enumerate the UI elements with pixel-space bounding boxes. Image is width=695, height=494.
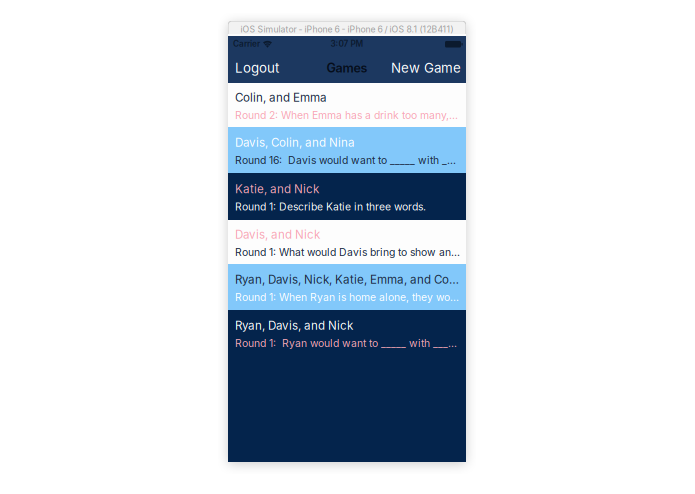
staticText: 3:07 PM — [330, 39, 363, 49]
staticText: Round 16: Davis would want to _____ with… — [235, 154, 456, 167]
staticText: Davis, and Nick — [235, 227, 320, 241]
button[interactable]: Katie, and Nick — [228, 173, 466, 220]
staticText: Colin, and Emma — [235, 90, 327, 104]
staticText: Katie, and Nick — [235, 182, 319, 196]
button[interactable]: Ryan, Davis, Nick, Katie, Emma, and Co… — [228, 264, 466, 310]
staticText: iOS Simulator - iPhone 6 - iPhone 6 / iO… — [240, 24, 453, 34]
staticText: Round 1: Describe Katie in three words. — [235, 200, 426, 213]
staticText: Round 1: When Ryan is home alone, they w… — [235, 291, 459, 304]
staticText: Round 2: When Emma has a drink too many,… — [235, 109, 458, 122]
button[interactable]: Davis, Colin, and Nina — [228, 127, 466, 173]
staticText: Davis, Colin, and Nina — [235, 135, 355, 149]
button[interactable]: Colin, and Emma — [228, 83, 466, 127]
button[interactable]: Ryan, Davis, and Nick — [228, 310, 466, 356]
button[interactable]: Logout — [228, 51, 285, 84]
staticText: Carrier — [233, 39, 260, 49]
staticText: Round 1: What would Davis bring to show … — [235, 246, 460, 259]
staticText: New Game — [391, 60, 461, 76]
button[interactable]: New Game — [385, 51, 466, 84]
button[interactable]: Davis, and Nick — [228, 220, 466, 264]
staticText: Logout — [235, 60, 279, 76]
staticText: Games — [326, 60, 367, 76]
staticText: Ryan, Davis, and Nick — [235, 318, 353, 332]
staticText: Round 1: Ryan would want to _____ with _… — [235, 337, 457, 350]
staticText: Ryan, Davis, Nick, Katie, Emma, and Co… — [235, 272, 459, 286]
